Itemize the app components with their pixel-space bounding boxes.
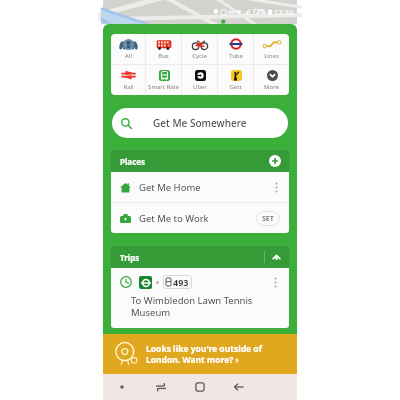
- staticText: All: [125, 52, 132, 60]
- button[interactable]: Get Me Somewhere: [112, 108, 288, 138]
- button[interactable]: Looks like you're outside of London. Wan…: [103, 334, 297, 374]
- button[interactable]: Trip options: [268, 275, 282, 289]
- button[interactable]: More: [254, 65, 289, 95]
- staticText: Get Me to Work: [139, 212, 209, 225]
- button[interactable]: All: [111, 34, 145, 64]
- staticText: 493: [173, 276, 189, 288]
- button[interactable]: Collapse trips: [270, 251, 283, 264]
- button[interactable]: Smart Ride: [146, 65, 181, 95]
- staticText: Looks like you're outside of London. Wan…: [146, 343, 262, 365]
- staticText: Get Me Home: [139, 181, 201, 194]
- staticText: 17:20: [274, 7, 294, 17]
- button[interactable]: Recent apps: [141, 374, 180, 400]
- staticText: Gett: [229, 83, 242, 91]
- button[interactable]: SET: [256, 211, 280, 226]
- staticText: Lines: [264, 52, 279, 60]
- staticText: More: [264, 83, 279, 91]
- button[interactable]: Back: [219, 374, 258, 400]
- button[interactable]: Trips: [111, 246, 289, 268]
- staticText: Smart Ride: [148, 83, 179, 91]
- button[interactable]: Get Me Home: [111, 172, 289, 202]
- staticText: SET: [262, 214, 274, 224]
- staticText: Tube: [229, 52, 243, 60]
- button[interactable]: Get Me to Work: [111, 203, 289, 233]
- button[interactable]: Home: [180, 374, 219, 400]
- staticText: Rail: [123, 83, 134, 91]
- staticText: Uber: [193, 83, 207, 91]
- button[interactable]: Add place: [269, 155, 281, 167]
- button[interactable]: Tube: [218, 34, 253, 64]
- staticText: Get Me Somewhere: [153, 116, 247, 130]
- button[interactable]: Rail: [111, 65, 145, 95]
- button[interactable]: Uber: [182, 65, 217, 95]
- staticText: Cycle: [192, 52, 207, 60]
- staticText: Bus: [158, 52, 169, 60]
- staticText: Trips: [120, 252, 140, 263]
- button[interactable]: Bus: [146, 34, 181, 64]
- staticText: Places: [120, 156, 146, 167]
- button[interactable]: Cycle: [182, 34, 217, 64]
- button[interactable]: More options: [269, 180, 283, 194]
- button[interactable]: Places: [111, 150, 289, 172]
- button[interactable]: Keyboard indicator: [103, 374, 141, 400]
- button[interactable]: Lines: [254, 34, 289, 64]
- staticText: 72%: [252, 7, 266, 17]
- staticText: To Wimbledon Lawn Tennis Museum: [131, 294, 273, 319]
- button[interactable]: Gett: [218, 65, 253, 95]
- button[interactable]: 493: [111, 268, 289, 328]
